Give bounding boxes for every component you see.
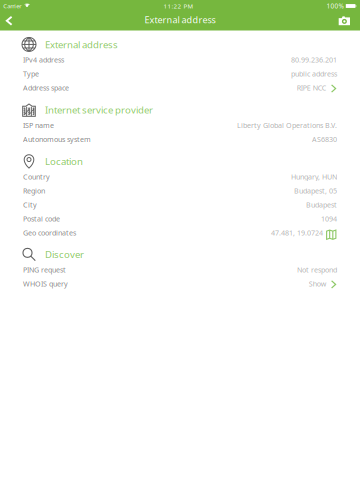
staticText: Autonomous system — [23, 134, 91, 144]
staticText: PING request — [23, 265, 66, 274]
staticText: External address — [45, 38, 118, 51]
staticText: ISP name — [23, 120, 54, 130]
staticText: 80.99.236.201 — [291, 55, 337, 65]
staticText: 1094 — [321, 214, 337, 223]
button[interactable]: WHOIS query — [0, 277, 360, 291]
staticText: public address — [291, 69, 337, 79]
staticText: Geo coordinates — [23, 228, 76, 237]
staticText: AS6830 — [312, 134, 337, 144]
staticText: 11:22 PM — [163, 2, 193, 10]
staticText: IPv4 address — [23, 55, 64, 65]
staticText: Region — [23, 186, 45, 195]
staticText: Location — [45, 155, 83, 168]
staticText: RIPE NCC — [297, 83, 327, 93]
staticText: External address — [144, 14, 215, 26]
staticText: Discover — [45, 248, 84, 261]
staticText: Internet service provider — [45, 103, 153, 116]
button[interactable]: Back — [0, 11, 22, 30]
staticText: Postal code — [23, 214, 60, 223]
button[interactable]: Address space — [0, 81, 360, 95]
staticText: Type — [23, 69, 39, 79]
staticText: 47.481, 19.0724 — [271, 228, 323, 237]
staticText: Country — [23, 172, 50, 181]
button[interactable]: Camera — [329, 11, 360, 30]
staticText: WHOIS query — [23, 279, 68, 288]
staticText: Budapest, 05 — [294, 186, 337, 195]
staticText: Carrier — [3, 2, 21, 10]
staticText: Hungary, HUN — [291, 172, 337, 181]
staticText: Budapest — [306, 200, 337, 209]
staticText: Liberty Global Operations B.V. — [237, 120, 337, 130]
staticText: Not respond — [297, 265, 337, 274]
staticText: 100% — [327, 2, 344, 10]
button[interactable]: Geo coordinates — [0, 226, 360, 240]
staticText: City — [23, 200, 37, 209]
staticText: Address space — [23, 83, 69, 93]
staticText: Show — [309, 279, 327, 288]
